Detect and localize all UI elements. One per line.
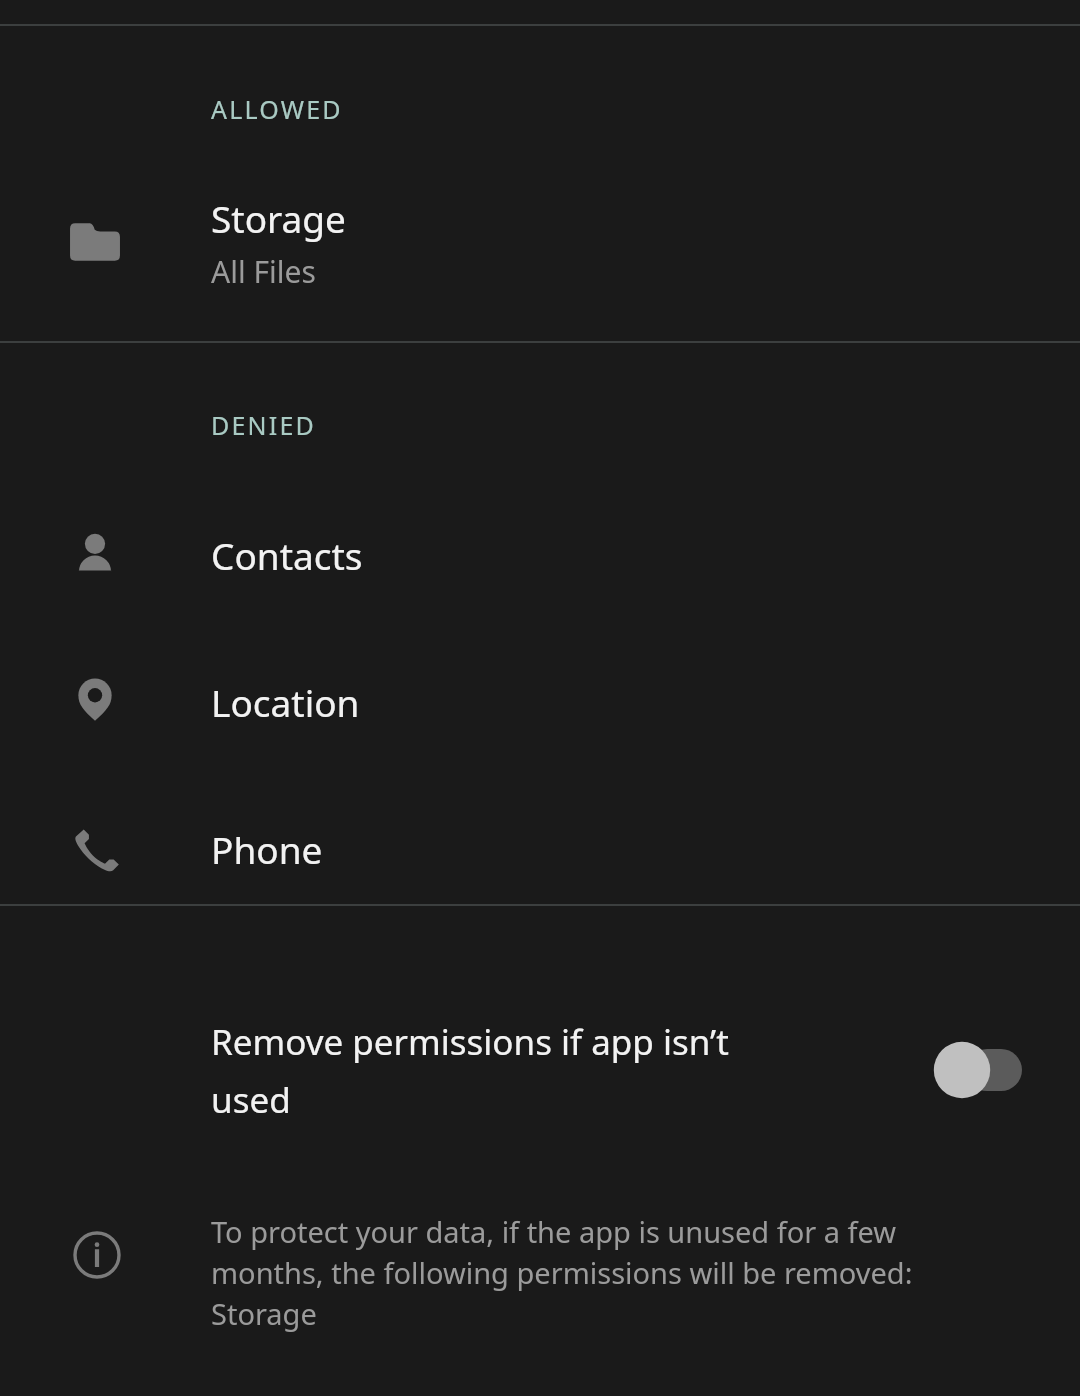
- button[interactable]: Remove permissions if app isn’t used: [0, 1005, 1080, 1135]
- staticText: All Files: [211, 251, 316, 292]
- button[interactable]: Phone: [0, 794, 1080, 904]
- button[interactable]: Storage: [0, 182, 1080, 302]
- staticText: Location: [211, 677, 360, 727]
- staticText: Contacts: [211, 530, 363, 580]
- staticText: Remove permissions if app isn’t used: [211, 1018, 811, 1123]
- staticText: Storage: [211, 193, 346, 243]
- staticText: DENIED: [211, 408, 316, 442]
- button[interactable]: Location: [0, 647, 1080, 757]
- staticText: To protect your data, if the app is unus…: [211, 1212, 995, 1334]
- button[interactable]: Contacts: [0, 500, 1080, 610]
- staticText: Phone: [211, 824, 323, 874]
- staticText: ALLOWED: [211, 92, 343, 126]
- button[interactable]: Remove permissions toggle, off: [932, 1040, 1022, 1100]
